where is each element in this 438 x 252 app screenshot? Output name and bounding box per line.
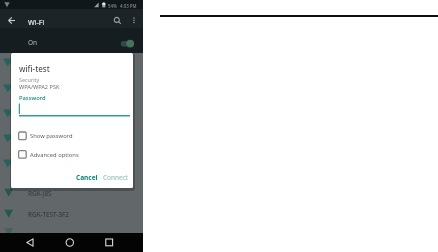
staticText: WPA/WPA2 PSK (19, 83, 60, 91)
button[interactable] (100, 234, 118, 252)
button[interactable] (22, 234, 40, 252)
staticText: Cancel (76, 173, 98, 182)
staticText: Show password (30, 132, 73, 140)
button[interactable] (61, 234, 79, 252)
button[interactable]: Cancel (71, 170, 97, 182)
staticText: RGK-J8S (28, 189, 52, 198)
button[interactable] (16, 129, 86, 142)
button[interactable] (16, 148, 86, 161)
staticText: wifi-test (19, 63, 50, 74)
staticText: Wi-Fi (28, 17, 45, 27)
staticText: Advanced options (30, 151, 79, 159)
button[interactable] (0, 28, 143, 53)
staticText: 54% (108, 3, 117, 9)
staticText: RGK-TEST-3F2 (28, 210, 69, 219)
staticText: 4:03 PM (120, 3, 137, 9)
staticText: Password (19, 94, 46, 102)
staticText: Security (19, 76, 40, 83)
staticText: Connect (103, 173, 129, 182)
button[interactable]: Connect (99, 170, 129, 182)
staticText: On (28, 38, 38, 47)
